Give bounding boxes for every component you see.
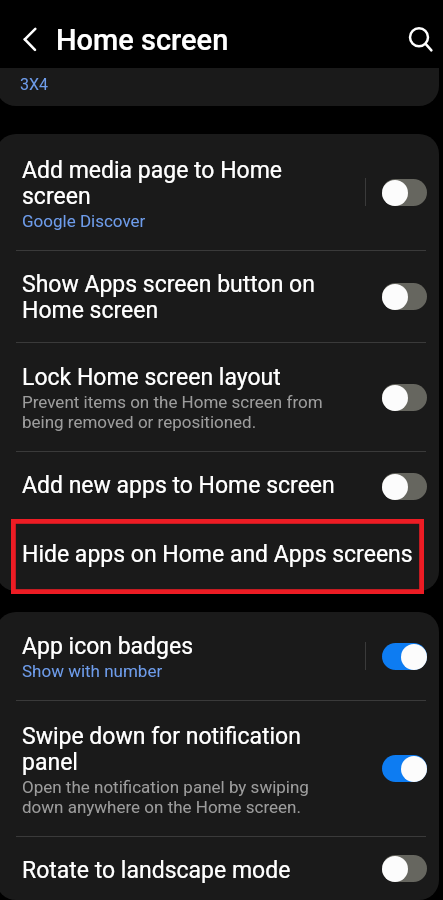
staticText: Google Discover xyxy=(22,211,146,231)
button[interactable]: Toggle off xyxy=(382,473,427,500)
button[interactable]: Swipe down for notification panel xyxy=(0,701,439,836)
staticText: Lock Home screen layout xyxy=(22,364,281,390)
staticText: Home screen xyxy=(56,23,229,57)
staticText: Rotate to landscape mode xyxy=(22,857,291,883)
button[interactable]: App icon badges xyxy=(0,612,439,700)
staticText: Show with number xyxy=(22,661,163,681)
button[interactable]: Toggle off xyxy=(382,855,427,882)
button[interactable]: Rotate to landscape mode xyxy=(0,837,439,900)
staticText: App icon badges xyxy=(22,633,194,659)
button[interactable]: Add new apps to Home screen xyxy=(0,452,439,521)
button[interactable]: Toggle off xyxy=(382,179,427,206)
button[interactable]: Toggle off xyxy=(382,283,427,310)
staticText: 3X4 xyxy=(20,75,49,94)
staticText: Swipe down for notification panel xyxy=(22,723,348,775)
staticText: Open the notification panel by swiping d… xyxy=(22,777,348,817)
staticText: Show Apps screen button on Home screen xyxy=(22,271,348,323)
button[interactable]: Toggle on xyxy=(382,643,427,670)
button[interactable]: Lock Home screen layout xyxy=(0,343,439,451)
staticText: Add media page to Home screen xyxy=(22,157,348,209)
button[interactable]: Show Apps screen button on Home screen xyxy=(0,251,439,342)
button[interactable]: 3X4 xyxy=(0,68,439,106)
button[interactable]: Hide apps on Home and Apps screens xyxy=(0,521,439,591)
button[interactable]: Toggle off xyxy=(382,384,427,411)
staticText: Hide apps on Home and Apps screens xyxy=(22,541,413,567)
button[interactable]: Navigate up xyxy=(6,15,54,63)
button[interactable]: Add media page to Home screen xyxy=(0,134,439,250)
button[interactable]: Toggle on xyxy=(382,755,427,782)
button[interactable]: Search xyxy=(395,14,443,62)
staticText: Add new apps to Home screen xyxy=(22,472,335,498)
staticText: Prevent items on the Home screen from be… xyxy=(22,392,348,432)
